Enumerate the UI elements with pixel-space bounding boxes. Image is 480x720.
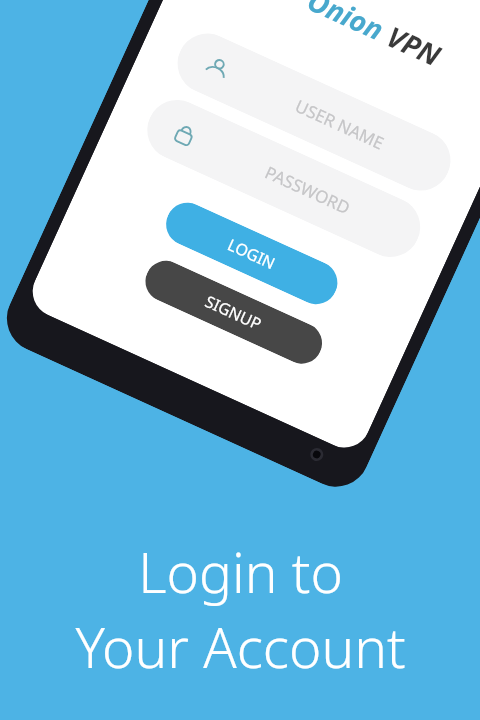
button[interactable]: Password <box>138 90 430 267</box>
other: User <box>187 32 244 102</box>
staticText: USER NAME <box>292 94 388 154</box>
button[interactable]: LOGIN <box>159 196 344 311</box>
staticText: LOGIN <box>224 233 279 274</box>
staticText: Your Account <box>75 609 406 684</box>
other: Password <box>157 99 214 168</box>
staticText: SIGNUP <box>202 290 265 335</box>
staticText: Onion <box>302 0 391 49</box>
staticText: Login to <box>138 534 343 609</box>
button[interactable]: SIGNUP <box>139 254 329 370</box>
staticText: VPN <box>381 17 447 74</box>
button[interactable]: User <box>168 24 460 200</box>
staticText: PASSWORD <box>261 161 354 219</box>
